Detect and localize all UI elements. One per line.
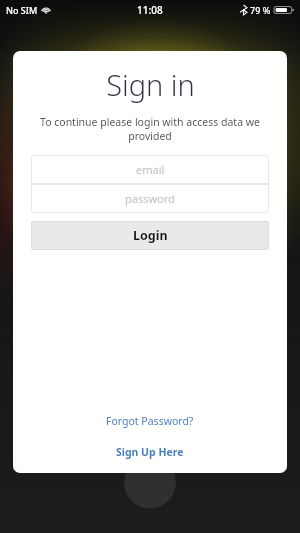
staticText: No SIM	[6, 4, 38, 16]
staticText: Forgot Password?	[106, 414, 194, 428]
button[interactable]: password	[31, 184, 269, 213]
staticText: Sign in	[106, 65, 195, 104]
staticText: 79 %	[250, 4, 271, 16]
button[interactable]: Login	[31, 221, 269, 250]
button[interactable]: Sign Up Here	[108, 442, 192, 462]
staticText: 11:08	[137, 3, 163, 17]
staticText: Login	[133, 227, 168, 244]
button[interactable]: Forgot Password?	[98, 411, 202, 431]
staticText: Sign Up Here	[116, 445, 184, 459]
staticText: password	[125, 191, 175, 206]
staticText: email	[136, 162, 165, 177]
staticText: To continue please login with access dat…	[31, 115, 269, 143]
button[interactable]: email	[31, 155, 269, 184]
